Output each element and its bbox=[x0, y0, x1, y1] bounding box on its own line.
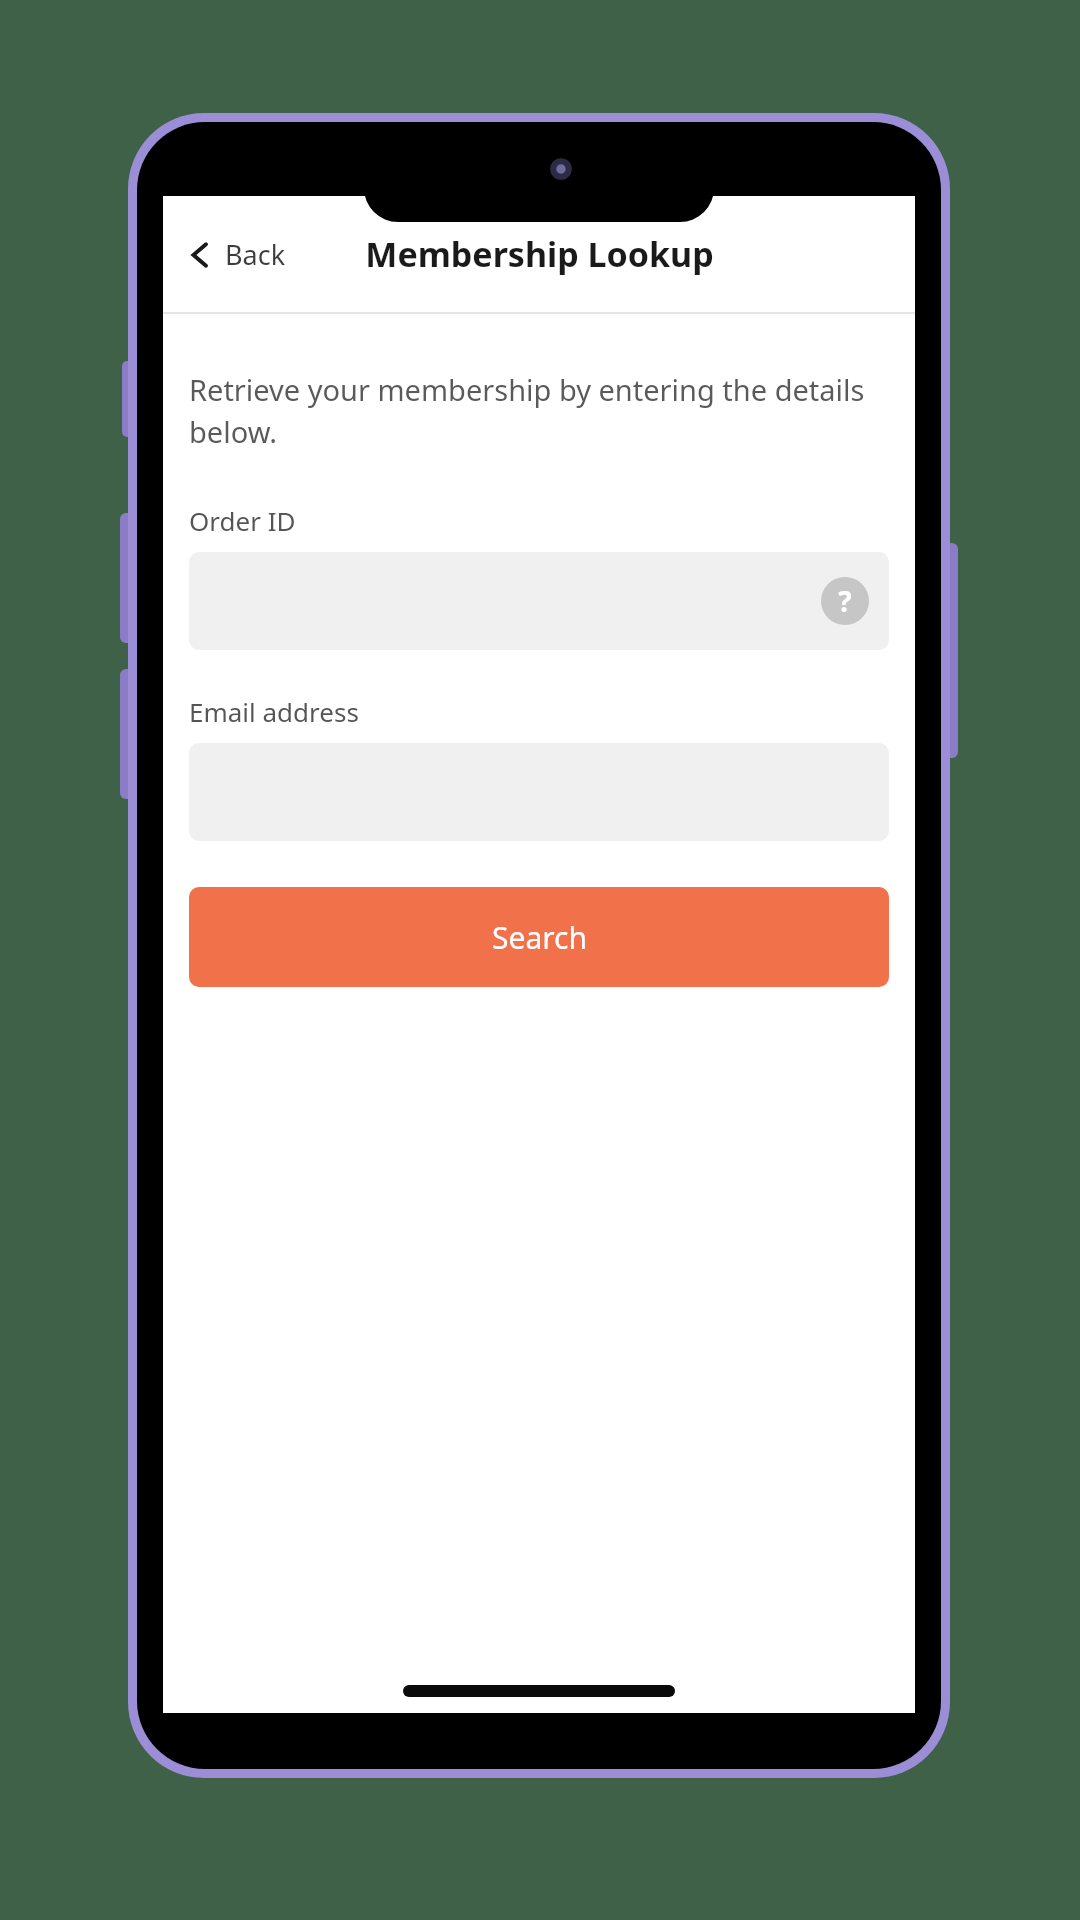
button[interactable]: Search bbox=[189, 887, 889, 987]
button[interactable]: Back bbox=[177, 228, 294, 281]
button[interactable]: Help about Order ID bbox=[189, 552, 889, 650]
staticText: Retrieve your membership by entering the… bbox=[189, 370, 889, 451]
staticText: Order ID bbox=[189, 503, 296, 538]
staticText: Search bbox=[492, 917, 587, 958]
staticText: ? bbox=[838, 582, 852, 620]
staticText: Back bbox=[225, 236, 286, 273]
staticText: Membership Lookup bbox=[365, 231, 714, 277]
button[interactable]: Help about Order ID bbox=[821, 577, 869, 625]
other: Back bbox=[185, 240, 215, 270]
staticText: Email address bbox=[189, 694, 359, 729]
